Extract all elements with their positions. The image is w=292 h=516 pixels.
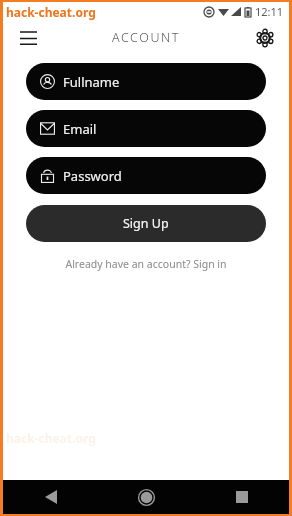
staticText: 12:11 bbox=[255, 4, 284, 19]
button[interactable]: Settings bbox=[249, 22, 281, 54]
button[interactable]: Recent apps bbox=[194, 480, 289, 514]
staticText: Email bbox=[63, 120, 97, 138]
button[interactable]: Already have an account? Sign in bbox=[26, 254, 266, 274]
staticText: Already have an account? Sign in bbox=[65, 257, 227, 271]
button[interactable]: Home bbox=[99, 480, 194, 514]
button[interactable]: Back bbox=[3, 480, 99, 514]
button[interactable]: Email bbox=[26, 110, 266, 147]
button[interactable]: Sign Up bbox=[26, 205, 266, 242]
staticText: Sign Up bbox=[123, 215, 169, 232]
button[interactable]: Password bbox=[26, 157, 266, 194]
staticText: hack-cheat.org bbox=[6, 4, 96, 20]
staticText: Password bbox=[63, 167, 122, 185]
staticText: Fullname bbox=[63, 73, 120, 91]
button[interactable]: Fullname bbox=[26, 63, 266, 100]
staticText: ACCOUNT bbox=[112, 29, 180, 46]
staticText: hack-cheat.org bbox=[6, 430, 96, 446]
button[interactable]: Open navigation menu bbox=[12, 22, 44, 54]
